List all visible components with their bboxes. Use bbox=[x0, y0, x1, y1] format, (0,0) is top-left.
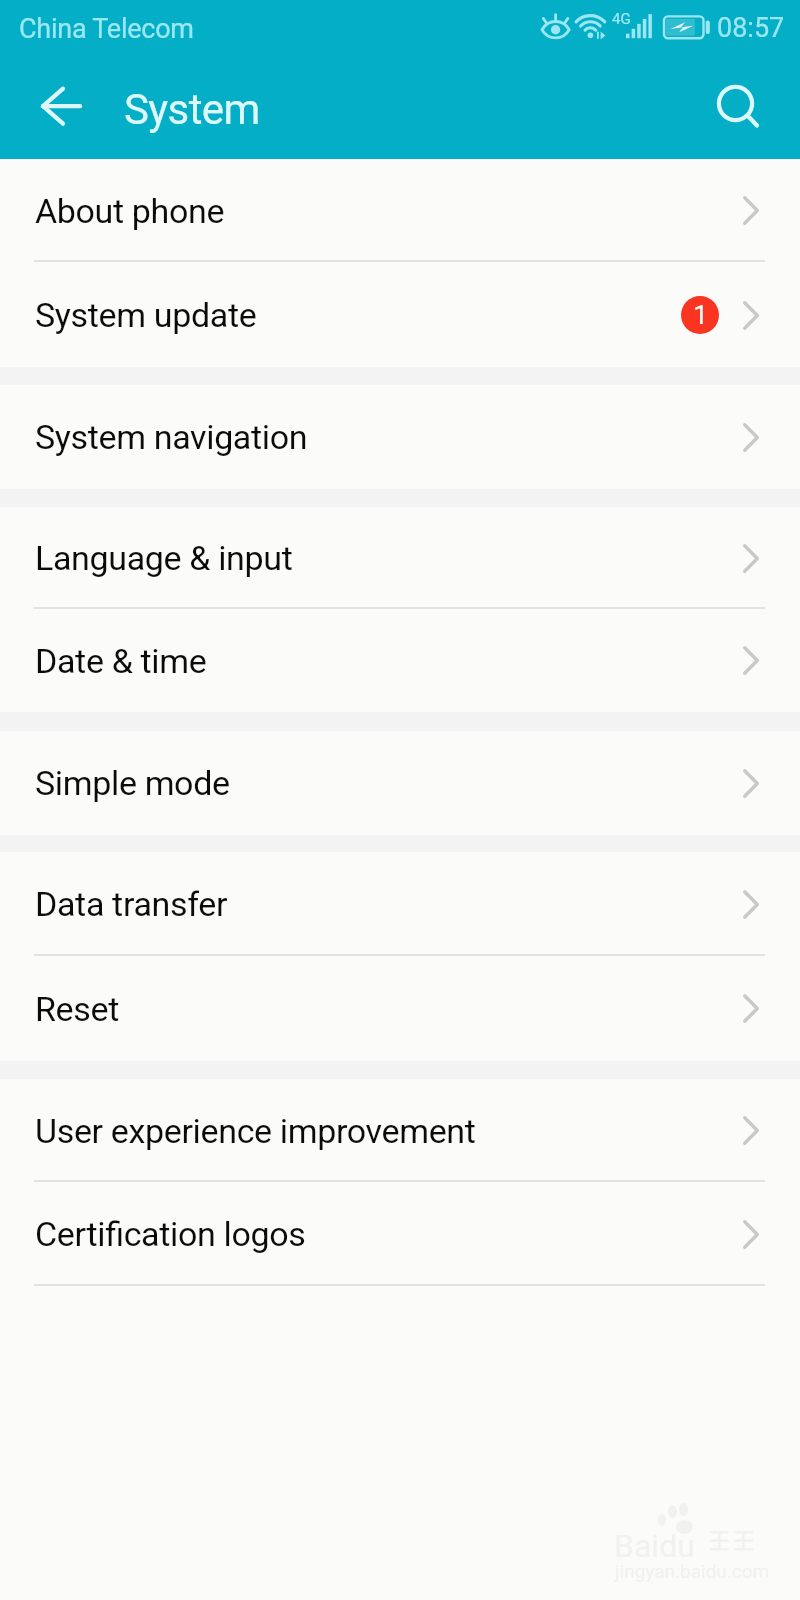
staticText: System bbox=[124, 85, 260, 134]
button[interactable]: Reset bbox=[0, 956, 800, 1061]
button[interactable]: User experience improvement bbox=[0, 1079, 800, 1182]
staticText: 1 bbox=[693, 300, 708, 330]
staticText: Data transfer bbox=[35, 884, 228, 924]
button[interactable]: Data transfer bbox=[0, 852, 800, 956]
staticText: System navigation bbox=[35, 417, 308, 457]
staticText: Simple mode bbox=[35, 763, 230, 803]
staticText: 08:57 bbox=[717, 12, 785, 44]
staticText: System update bbox=[35, 295, 257, 335]
button[interactable]: About phone bbox=[0, 159, 800, 262]
staticText: About phone bbox=[35, 191, 225, 231]
staticText: Date & time bbox=[35, 641, 207, 681]
staticText: User experience improvement bbox=[35, 1111, 476, 1151]
button[interactable]: System navigation bbox=[0, 385, 800, 489]
staticText: Language & input bbox=[35, 538, 293, 578]
staticText: jingyan.baidu.com bbox=[615, 1560, 770, 1582]
button[interactable]: System update bbox=[0, 262, 800, 367]
button[interactable]: Certification logos bbox=[0, 1182, 800, 1286]
staticText: Baidu bbox=[614, 1527, 695, 1565]
staticText: Reset bbox=[35, 989, 119, 1029]
button[interactable]: Language & input bbox=[0, 507, 800, 609]
button[interactable]: Date & time bbox=[0, 609, 800, 712]
staticText: Certification logos bbox=[35, 1214, 306, 1254]
staticText: 4G bbox=[612, 10, 631, 28]
button[interactable]: Back bbox=[0, 57, 104, 159]
button[interactable]: Search bbox=[690, 57, 800, 159]
button[interactable]: Simple mode bbox=[0, 731, 800, 835]
staticText: China Telecom bbox=[19, 13, 194, 45]
